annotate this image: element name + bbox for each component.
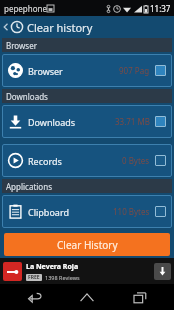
staticText: Clear History (57, 238, 118, 252)
staticText: 1398 Reviews (45, 274, 80, 281)
button[interactable]: Toggle Downloads (155, 116, 166, 127)
button[interactable]: La Nevera Roja (0, 258, 174, 284)
other: Back (3, 22, 9, 32)
button[interactable]: Install (154, 263, 171, 280)
staticText: 907 Pag (119, 65, 150, 76)
button[interactable]: Clipboard (2, 195, 172, 228)
staticText: La Nevera Roja (26, 262, 79, 272)
staticText: FREE (28, 274, 40, 281)
button[interactable]: Downloads (2, 105, 172, 138)
button[interactable]: Toggle Records (155, 155, 166, 166)
staticText: Applications (6, 181, 52, 192)
staticText: 0 Bytes (122, 155, 150, 166)
staticText: Clipboard (28, 206, 69, 218)
button[interactable]: Browser (2, 54, 172, 87)
staticText: 11:37 (150, 3, 171, 14)
staticText: Downloads (28, 116, 76, 128)
button[interactable]: Toggle Clipboard (155, 206, 166, 217)
staticText: 33.71 MB (115, 116, 150, 127)
button[interactable]: Records (2, 144, 172, 177)
staticText: Browser (28, 65, 63, 77)
button[interactable]: Back (0, 16, 174, 38)
button[interactable]: Back (17, 285, 53, 309)
staticText: Browser (6, 40, 37, 51)
staticText: 110 Bytes (113, 206, 150, 217)
button[interactable]: Recents (122, 285, 158, 309)
button[interactable]: Toggle Browser (155, 65, 166, 76)
staticText: Clear history (27, 20, 93, 35)
staticText: Records (28, 155, 62, 167)
staticText: pepephone (4, 3, 48, 14)
button[interactable]: Home (69, 285, 105, 309)
staticText: Downloads (6, 91, 48, 102)
button[interactable]: Clear History (4, 233, 170, 256)
